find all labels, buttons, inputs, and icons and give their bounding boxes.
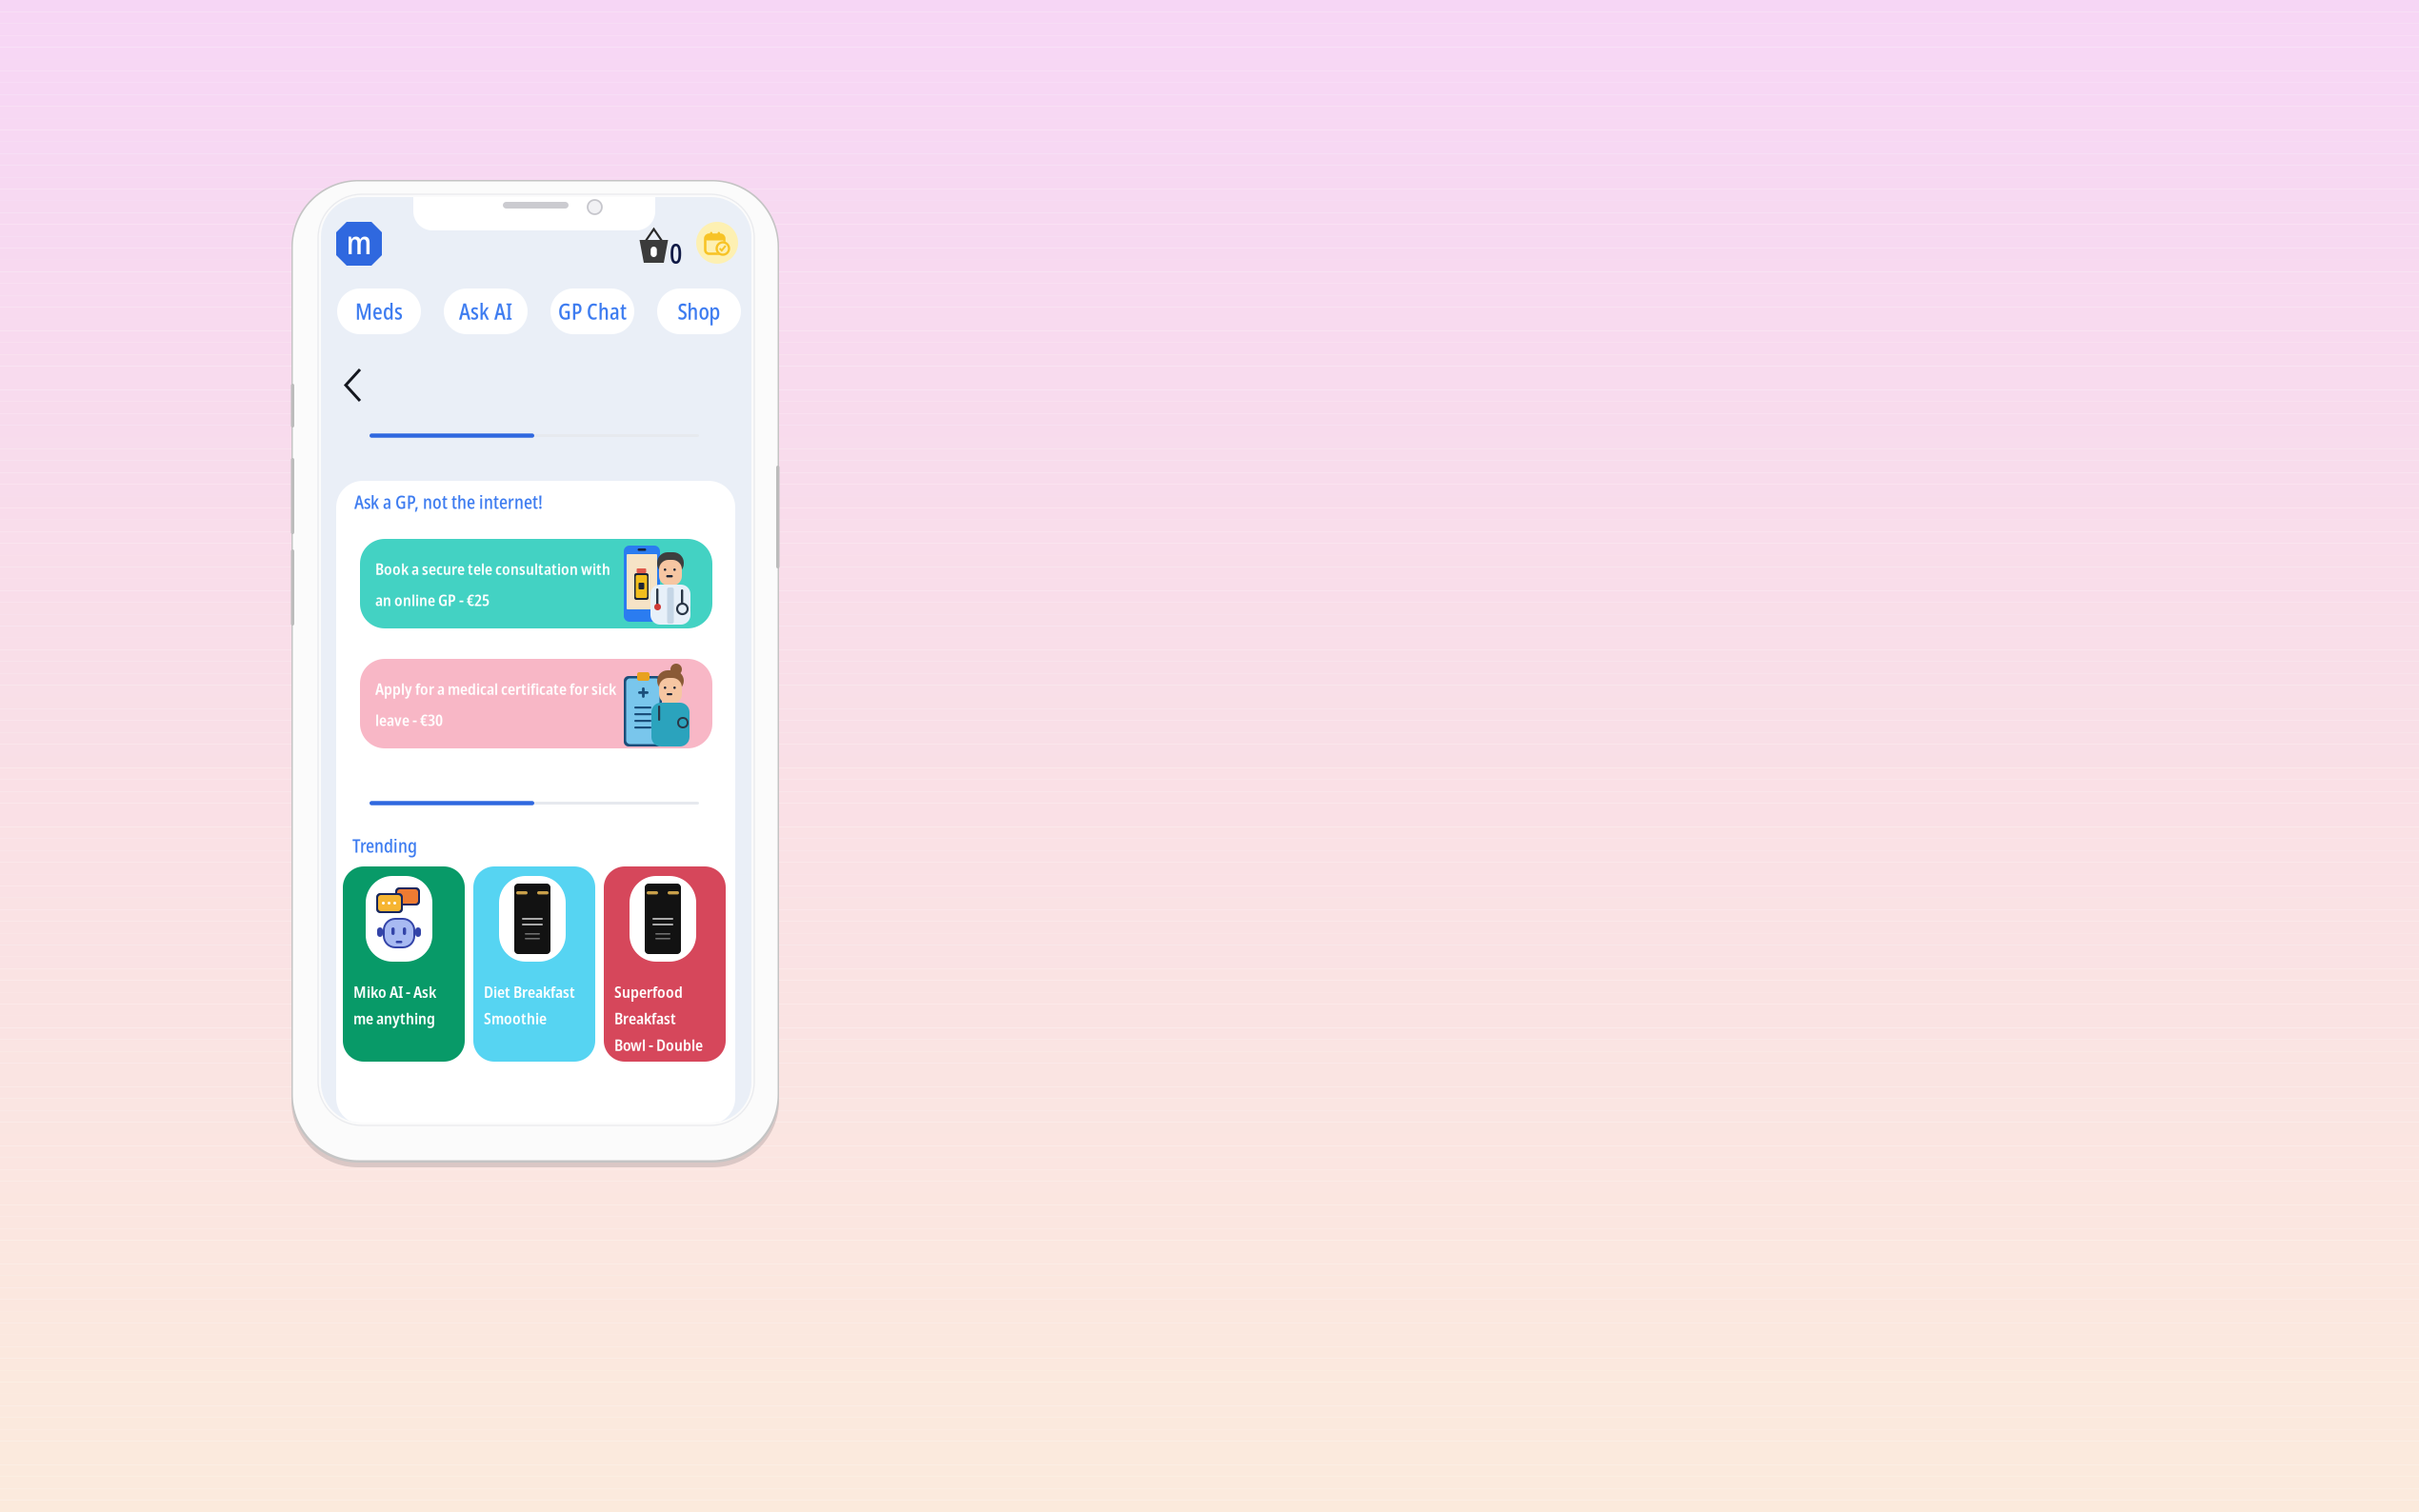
staticText: Superfood [614,981,683,1003]
staticText: Smoothie [484,1007,547,1029]
staticText: m [346,219,372,264]
button[interactable]: GP Chat [550,288,634,334]
staticText: Meds [355,297,403,326]
staticText: Shop [678,297,720,326]
button[interactable]: Back [334,357,372,414]
button[interactable]: Superfood [604,866,726,1062]
staticText: Ask a GP, not the internet! [354,489,543,514]
button[interactable]: Ask AI [444,288,528,334]
staticText: leave - €30 [375,709,443,731]
button[interactable]: Basket, 0 items [639,218,685,262]
staticText: Ask AI [459,297,512,326]
staticText: an online GP - €25 [375,589,490,611]
staticText: Book a secure tele consultation with [375,558,610,580]
button[interactable]: Medino home [336,222,382,266]
button[interactable]: Meds [337,288,421,334]
staticText: Miko AI - Ask [353,981,436,1003]
staticText: Apply for a medical certificate for sick [375,678,616,700]
staticText: Trending [352,833,417,858]
staticText: 0 [670,235,682,271]
staticText: me anything [353,1007,435,1029]
staticText: Diet Breakfast [484,981,575,1003]
button[interactable]: Diet Breakfast [473,866,595,1062]
button[interactable]: Shop [657,288,741,334]
button[interactable]: Apply for a medical certificate for sick [360,659,712,748]
button[interactable]: Miko AI - Ask [343,866,465,1062]
button[interactable]: Book a secure tele consultation with [360,539,712,628]
staticText: Bowl - Double [614,1034,703,1056]
staticText: Breakfast [614,1007,676,1029]
button[interactable]: Appointments [696,222,738,264]
staticText: GP Chat [558,297,627,326]
